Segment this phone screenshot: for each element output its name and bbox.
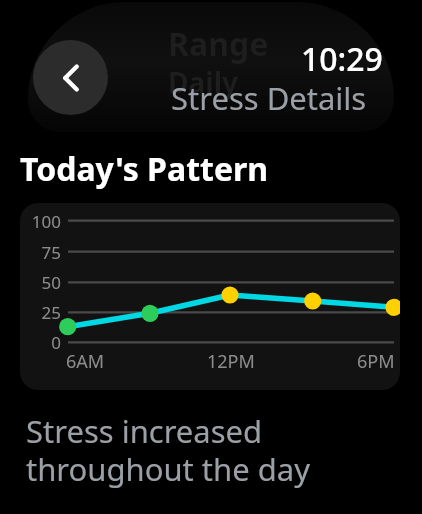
staticText: 0	[20, 331, 61, 353]
staticText: 50	[20, 271, 61, 293]
staticText: Stress increased throughout the day	[26, 410, 310, 490]
staticText: 25	[20, 301, 61, 323]
button[interactable]: 100	[20, 203, 400, 390]
staticText: Stress Details	[171, 77, 367, 119]
staticText: 6PM	[357, 349, 395, 374]
button[interactable]: Back	[33, 40, 108, 115]
staticText: 75	[20, 241, 61, 263]
staticText: Today's Pattern	[20, 147, 269, 191]
staticText: 100	[20, 210, 61, 232]
staticText: Daily	[168, 63, 238, 101]
staticText: 12PM	[207, 349, 255, 374]
staticText: 10:29	[301, 37, 383, 81]
staticText: 6AM	[66, 349, 105, 374]
staticText: Range	[168, 22, 269, 66]
